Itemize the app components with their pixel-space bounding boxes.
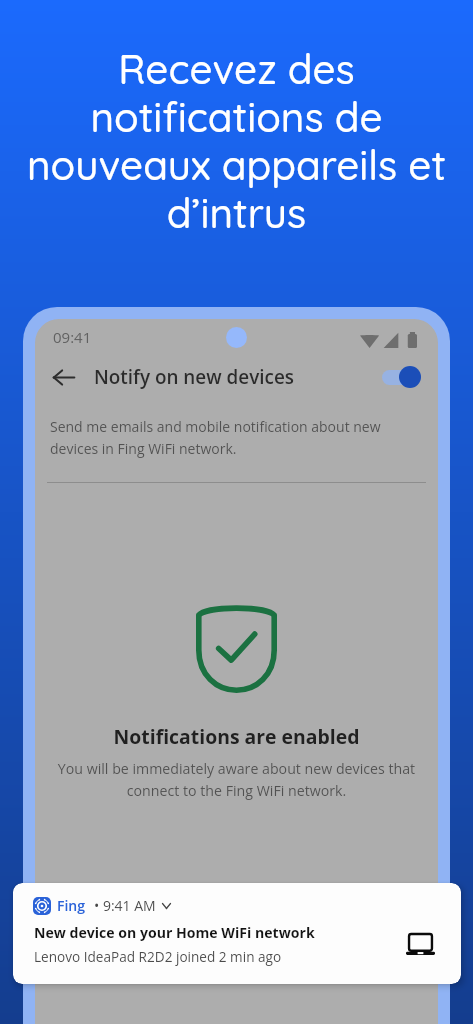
staticText: Send me emails and mobile notification a… <box>50 417 400 458</box>
staticText: 09:41 <box>53 327 92 347</box>
staticText: Fing <box>57 896 86 915</box>
staticText: New device on your Home WiFi network <box>34 923 315 942</box>
staticText: Recevez des notifications de nouveaux ap… <box>10 44 463 239</box>
button[interactable]: Toggle notifications <box>380 362 424 392</box>
staticText: You will be immediately aware about new … <box>49 759 424 800</box>
staticText: Lenovo IdeaPad R2D2 joined 2 min ago <box>34 947 282 966</box>
staticText: Notifications are enabled <box>35 723 438 749</box>
staticText: Notify on new devices <box>94 364 295 390</box>
button[interactable]: Fing <box>13 883 461 984</box>
other: Laptop <box>406 934 435 955</box>
button[interactable]: Back <box>46 360 80 394</box>
staticText: • 9:41 AM <box>94 896 156 915</box>
